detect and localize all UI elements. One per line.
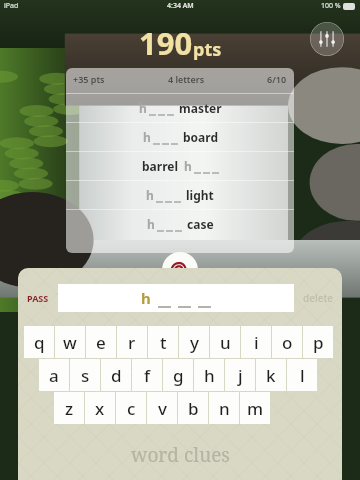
staticText: m <box>247 397 264 420</box>
staticText: h <box>204 364 215 387</box>
staticText: h <box>141 288 151 308</box>
button[interactable]: delete <box>294 284 342 312</box>
button[interactable]: p <box>303 326 333 358</box>
staticText: PASS <box>27 292 49 304</box>
button[interactable]: h <box>194 359 224 391</box>
button[interactable]: v <box>147 392 177 424</box>
button[interactable]: PASS <box>18 284 58 312</box>
button[interactable]: h <box>66 122 294 151</box>
staticText: h <box>147 216 155 232</box>
staticText: r <box>128 331 136 354</box>
staticText: h <box>139 100 147 116</box>
staticText: k <box>266 364 276 387</box>
button[interactable]: t <box>148 326 178 358</box>
staticText: pts <box>193 37 222 62</box>
button[interactable]: i <box>241 326 271 358</box>
staticText: l <box>300 364 305 387</box>
button[interactable]: d <box>101 359 131 391</box>
staticText: g <box>173 364 184 387</box>
staticText: 6/10 <box>267 73 287 85</box>
button[interactable]: h <box>66 93 294 122</box>
staticText: y <box>190 331 199 354</box>
staticText: t <box>160 331 167 354</box>
button[interactable]: y <box>179 326 209 358</box>
button[interactable]: z <box>54 392 84 424</box>
staticText: h <box>146 187 154 203</box>
button[interactable]: a <box>39 359 69 391</box>
button[interactable]: l <box>287 359 317 391</box>
staticText: x <box>95 397 105 420</box>
staticText: h <box>143 129 151 145</box>
staticText: h <box>184 158 192 174</box>
staticText: 100 % <box>321 1 341 11</box>
staticText: word clues <box>131 442 230 468</box>
button[interactable]: Settings <box>310 22 344 56</box>
button[interactable]: e <box>86 326 116 358</box>
staticText: master <box>179 100 222 116</box>
staticText: v <box>158 397 167 420</box>
staticText: light <box>186 187 214 203</box>
staticText: e <box>96 331 106 354</box>
button[interactable]: m <box>240 392 270 424</box>
button[interactable]: barrel <box>66 151 294 180</box>
staticText: w <box>63 331 77 354</box>
button[interactable]: o <box>272 326 302 358</box>
staticText: p <box>313 331 324 354</box>
staticText: 4 letters <box>105 73 267 85</box>
button[interactable]: h <box>66 209 294 238</box>
button[interactable]: r <box>117 326 147 358</box>
button[interactable]: k <box>256 359 286 391</box>
button[interactable]: q <box>24 326 54 358</box>
staticText: j <box>238 364 243 387</box>
button[interactable]: c <box>116 392 146 424</box>
staticText: n <box>219 397 230 420</box>
button[interactable]: h <box>66 180 294 209</box>
button[interactable]: w <box>55 326 85 358</box>
button[interactable]: x <box>85 392 115 424</box>
staticText: z <box>65 397 74 420</box>
button[interactable]: b <box>178 392 208 424</box>
button[interactable]: u <box>210 326 240 358</box>
staticText: d <box>111 364 122 387</box>
staticText: f <box>144 364 151 387</box>
staticText: delete <box>303 291 333 305</box>
staticText: s <box>81 364 90 387</box>
staticText: c <box>127 397 136 420</box>
button[interactable]: Shuffle <box>162 252 198 288</box>
staticText: u <box>220 331 231 354</box>
staticText: a <box>49 364 59 387</box>
button[interactable]: j <box>225 359 255 391</box>
staticText: b <box>188 397 199 420</box>
button[interactable]: f <box>132 359 162 391</box>
staticText: case <box>187 216 214 232</box>
button[interactable]: g <box>163 359 193 391</box>
staticText: q <box>34 331 45 354</box>
staticText: +35 pts <box>73 73 105 85</box>
staticText: barrel <box>142 158 179 174</box>
button[interactable]: s <box>70 359 100 391</box>
staticText: o <box>282 331 293 354</box>
staticText: 4:34 AM <box>167 1 194 11</box>
staticText: board <box>183 129 218 145</box>
staticText: 190 <box>139 22 193 64</box>
staticText: i <box>254 331 259 354</box>
button[interactable]: n <box>209 392 239 424</box>
staticText: iPad <box>4 1 19 11</box>
